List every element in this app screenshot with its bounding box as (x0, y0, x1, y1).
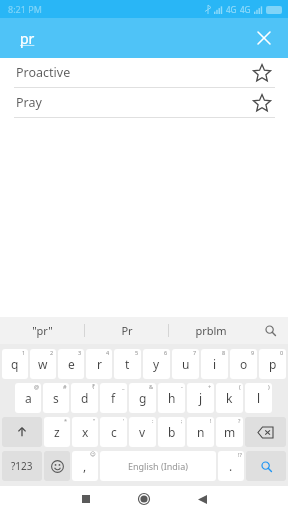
staticText: ) (268, 383, 270, 390)
staticText: k (226, 390, 233, 406)
staticText: : (152, 417, 154, 424)
staticText: . (229, 458, 233, 474)
staticText: m (224, 424, 236, 440)
button[interactable]: Search suggestions (252, 317, 288, 344)
staticText: r (97, 356, 102, 372)
staticText: y (153, 356, 160, 372)
staticText: + (208, 383, 212, 390)
button[interactable]: 7 (172, 349, 199, 379)
button[interactable]: Pr (85, 317, 168, 344)
staticText: Proactive (16, 64, 250, 81)
button[interactable]: Back (173, 486, 231, 512)
button[interactable]: _ (100, 383, 127, 413)
button[interactable]: Shift (2, 417, 42, 447)
staticText: 8 (222, 349, 226, 356)
staticText: u (182, 356, 190, 372)
button[interactable]: 9 (230, 349, 257, 379)
staticText: w (38, 356, 48, 372)
button[interactable]: @ (15, 383, 41, 413)
button[interactable]: Proactive (0, 58, 288, 88)
button[interactable]: + (187, 383, 214, 413)
button[interactable]: Favorite Pray (250, 91, 274, 115)
staticText: h (168, 390, 176, 406)
button[interactable]: 6 (143, 349, 170, 379)
button[interactable]: Clear search (250, 24, 278, 52)
button[interactable]: !? (218, 451, 244, 481)
staticText: p (269, 356, 277, 372)
staticText: ! (210, 417, 212, 424)
staticText: q (11, 356, 19, 372)
button[interactable]: "pr" (0, 317, 84, 344)
button[interactable]: 5 (114, 349, 141, 379)
button[interactable]: Emoji (44, 451, 70, 481)
staticText: ☺ (90, 451, 96, 457)
staticText: 4G (226, 4, 237, 15)
button[interactable]: ☺ (72, 451, 98, 481)
staticText: f (111, 390, 116, 406)
staticText: pr (20, 29, 35, 48)
button[interactable]: Home (115, 486, 173, 512)
staticText: " (93, 417, 96, 424)
staticText: @ (34, 383, 39, 390)
button[interactable]: " (72, 417, 98, 447)
staticText: Pray (16, 94, 250, 111)
staticText: 4G (240, 4, 251, 15)
staticText: 8:21 PM (8, 3, 42, 15)
staticText: s (53, 390, 59, 406)
staticText: 7 (193, 349, 197, 356)
staticText: "pr" (32, 323, 53, 338)
staticText: & (149, 383, 154, 390)
button[interactable]: Pray (0, 88, 288, 118)
button[interactable]: ) (245, 383, 272, 413)
button[interactable]: English (India) (100, 451, 216, 481)
staticText: z (54, 424, 60, 440)
button[interactable]: ( (216, 383, 243, 413)
button[interactable]: Recents (57, 486, 115, 512)
staticText: 9 (251, 349, 255, 356)
staticText: ?123 (11, 459, 33, 473)
button[interactable]: ' (100, 417, 127, 447)
staticText: !? (238, 451, 242, 458)
staticText: Pr (121, 323, 133, 338)
button[interactable]: - (158, 383, 185, 413)
staticText: * (64, 417, 68, 424)
button[interactable]: ?123 (2, 451, 42, 481)
staticText: 3 (78, 349, 82, 356)
staticText: a (25, 390, 32, 406)
staticText: l (257, 390, 261, 406)
button[interactable]: # (43, 383, 69, 413)
staticText: x (82, 424, 89, 440)
button[interactable]: * (44, 417, 70, 447)
staticText: # (63, 383, 67, 390)
staticText: g (139, 390, 147, 406)
button[interactable]: 1 (2, 349, 28, 379)
button[interactable]: 4 (86, 349, 112, 379)
staticText: 6 (164, 349, 168, 356)
button[interactable]: 0 (259, 349, 286, 379)
staticText: o (240, 356, 248, 372)
button[interactable]: 2 (30, 349, 56, 379)
staticText: prblm (195, 323, 227, 338)
button[interactable]: 8 (201, 349, 228, 379)
button[interactable]: ? (216, 417, 243, 447)
staticText: d (81, 390, 89, 406)
staticText: 0 (280, 349, 284, 356)
button[interactable]: Search (246, 451, 286, 481)
button[interactable]: ! (187, 417, 214, 447)
button[interactable]: Backspace (245, 417, 286, 447)
button[interactable]: : (129, 417, 156, 447)
button[interactable]: & (129, 383, 156, 413)
staticText: English (India) (128, 460, 188, 472)
staticText: , (83, 458, 87, 474)
button[interactable]: ; (158, 417, 185, 447)
staticText: ' (123, 417, 125, 424)
staticText: 1 (22, 349, 26, 356)
button[interactable]: prblm (169, 317, 252, 344)
staticText: i (213, 356, 217, 372)
staticText: 5 (135, 349, 139, 356)
button[interactable]: Favorite Proactive (250, 61, 274, 85)
button[interactable]: ₹ (71, 383, 98, 413)
staticText: _ (122, 383, 125, 390)
staticText: ? (238, 417, 241, 424)
button[interactable]: 3 (58, 349, 84, 379)
